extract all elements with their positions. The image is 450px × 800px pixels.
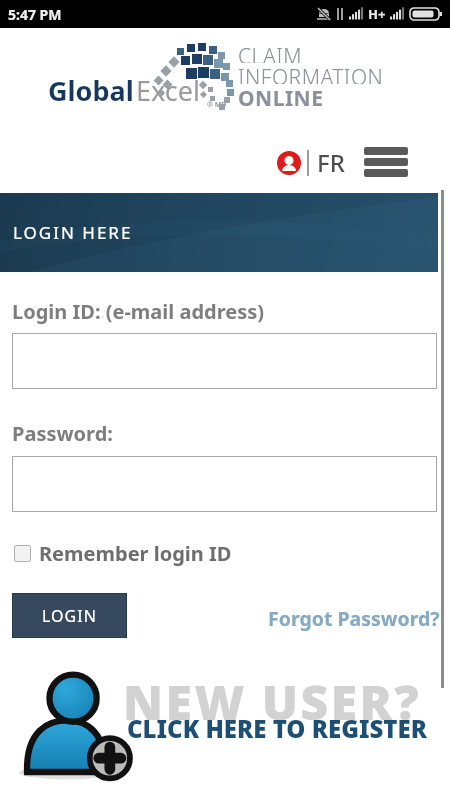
staticText: FR bbox=[317, 146, 345, 179]
staticText: NEW USER? bbox=[123, 669, 422, 734]
button[interactable] bbox=[364, 147, 408, 177]
staticText: Global bbox=[48, 72, 134, 109]
staticText: ® MD bbox=[207, 100, 227, 110]
staticText: CLICK HERE TO REGISTER bbox=[127, 712, 427, 745]
staticText: H+ bbox=[368, 5, 386, 23]
button[interactable]: Forgot Password? bbox=[268, 605, 440, 632]
staticText: CLAIM bbox=[238, 42, 303, 63]
staticText: LOGIN HERE bbox=[13, 221, 133, 244]
staticText: 5:47 PM bbox=[8, 5, 62, 24]
button[interactable]: FR bbox=[277, 146, 345, 179]
staticText: Password: bbox=[12, 420, 113, 447]
staticText: Login ID: (e-mail address) bbox=[12, 298, 265, 325]
button[interactable] bbox=[12, 456, 437, 512]
button[interactable]: Remember login ID bbox=[14, 540, 232, 567]
staticText: ONLINE bbox=[238, 84, 324, 113]
staticText: Excel bbox=[136, 72, 200, 109]
staticText: Remember login ID bbox=[39, 540, 232, 567]
staticText: INFORMATION bbox=[238, 63, 384, 84]
staticText: LOGIN bbox=[42, 605, 97, 627]
button[interactable]: NEW USER? bbox=[0, 650, 450, 800]
button[interactable] bbox=[12, 333, 437, 389]
button[interactable]: LOGIN bbox=[12, 593, 127, 638]
